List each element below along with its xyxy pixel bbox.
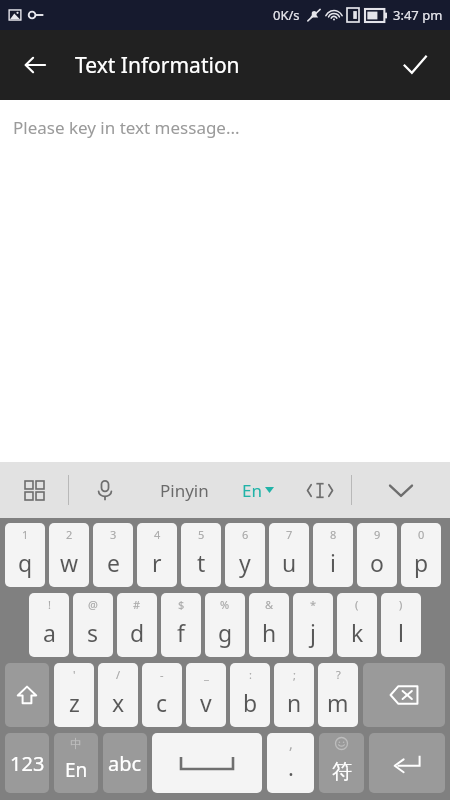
staticText: - [160,667,164,682]
button[interactable]: , [267,733,314,793]
button[interactable]: Symbols [319,733,364,793]
button[interactable]: 3 [93,523,133,587]
button[interactable]: _ [186,663,226,727]
staticText: , [289,734,293,753]
staticText: 123 [10,750,45,777]
staticText: 3:47 pm [393,6,443,24]
button[interactable]: # [117,593,157,657]
staticText: Please key in text message... [13,116,240,139]
staticText: 9 [374,527,381,542]
staticText: . [288,752,294,782]
staticText: d [130,617,145,648]
button[interactable]: Backspace [363,663,445,727]
button[interactable]: 6 [225,523,265,587]
staticText: # [133,597,141,612]
button[interactable]: * [293,593,333,657]
staticText: f [177,617,185,648]
staticText: r [152,547,162,578]
staticText: / [116,667,121,682]
button[interactable]: ; [274,663,314,727]
staticText: j [310,617,316,648]
button[interactable]: 0 [401,523,441,587]
staticText: : [249,667,252,682]
staticText: 2 [66,527,73,542]
staticText: n [287,687,302,718]
staticText: u [282,547,297,578]
staticText: $ [178,597,185,612]
button[interactable]: 中 [54,733,98,793]
button[interactable]: 9 [357,523,397,587]
staticText: w [60,547,79,578]
button[interactable]: ? [318,663,358,727]
button[interactable]: : [230,663,270,727]
staticText: v [200,687,212,718]
button[interactable]: Confirm [392,42,438,88]
staticText: z [69,687,80,718]
staticText: b [243,687,258,718]
staticText: x [112,687,125,718]
button[interactable]: Enter [369,733,445,793]
button[interactable]: 1 [5,523,45,587]
button[interactable]: abc [103,733,147,793]
button[interactable]: 5 [181,523,221,587]
button[interactable]: Shift [5,663,49,727]
staticText: y [239,547,251,578]
staticText: ) [399,597,403,612]
staticText: En [242,479,262,502]
staticText: ? [336,667,341,682]
staticText: s [87,617,99,648]
staticText: g [218,617,233,648]
button[interactable]: ' [54,663,94,727]
staticText: 1 [22,527,29,542]
staticText: p [414,547,429,578]
button[interactable]: 8 [313,523,353,587]
staticText: 3 [110,527,117,542]
button[interactable]: Hide keyboard [352,462,450,518]
button[interactable]: @ [73,593,113,657]
button[interactable]: 2 [49,523,89,587]
button[interactable]: Move cursor [289,462,351,518]
button[interactable]: 123 [5,733,49,793]
button[interactable]: Please key in text message... [0,100,450,462]
button[interactable]: - [142,663,182,727]
staticText: t [197,547,206,578]
staticText: * [310,597,317,612]
staticText: m [327,687,349,718]
button[interactable]: ( [337,593,377,657]
staticText: % [220,597,230,612]
staticText: 0K/s [273,6,300,24]
button[interactable]: & [249,593,289,657]
staticText: 6 [242,527,249,542]
button[interactable]: 4 [137,523,177,587]
staticText: _ [204,667,209,682]
staticText: 符 [332,759,352,784]
button[interactable]: Keyboard layouts [0,462,68,518]
staticText: 0 [418,527,425,542]
button[interactable]: Back [14,44,56,86]
button[interactable]: 7 [269,523,309,587]
button[interactable]: Space [152,733,262,793]
staticText: h [262,617,277,648]
staticText: o [370,547,384,578]
button[interactable]: / [98,663,138,727]
button[interactable]: ) [381,593,421,657]
staticText: 4 [154,527,161,542]
button[interactable]: ! [29,593,69,657]
staticText: @ [88,597,98,612]
button[interactable]: Voice input [69,462,141,518]
staticText: 8 [330,527,337,542]
button[interactable]: $ [161,593,201,657]
staticText: ' [73,667,76,682]
staticText: En [65,757,88,783]
staticText: q [18,547,33,578]
staticText: & [265,597,274,612]
staticText: 7 [286,527,293,542]
staticText: ; [293,667,296,682]
staticText: c [156,687,168,718]
staticText: l [398,617,404,648]
button[interactable]: En [227,462,289,518]
button[interactable]: Pinyin [141,462,227,518]
button[interactable]: % [205,593,245,657]
staticText: abc [108,750,142,777]
staticText: k [351,617,364,648]
